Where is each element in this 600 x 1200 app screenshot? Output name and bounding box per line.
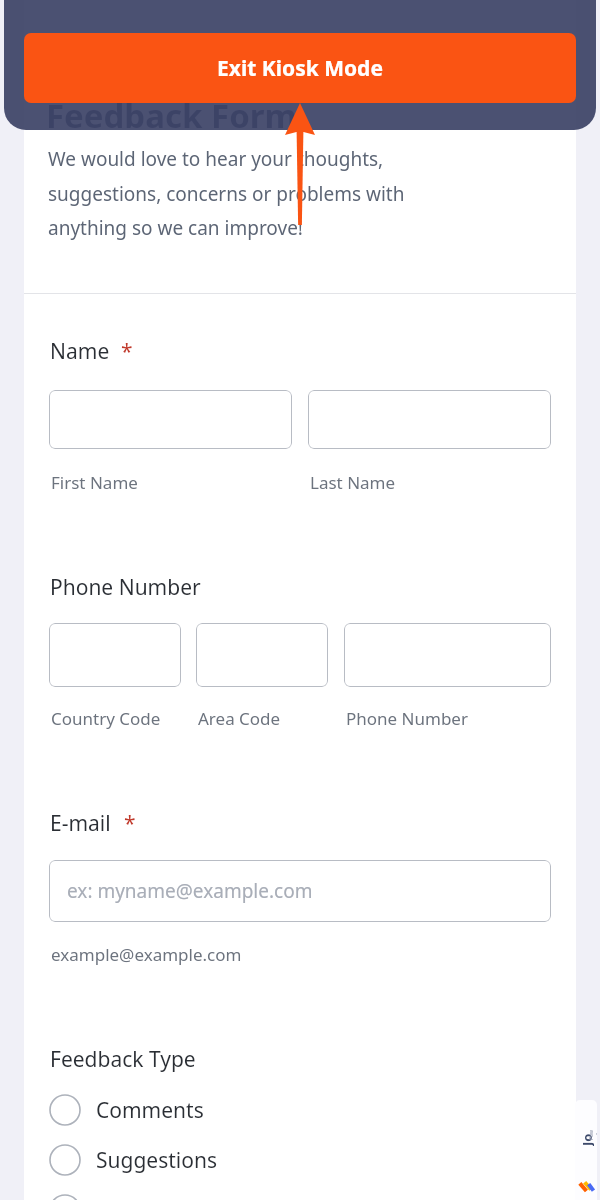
staticText: Feedback Form	[46, 93, 297, 138]
button[interactable]: Questions	[24, 1186, 576, 1200]
staticText: Area Code	[198, 707, 281, 730]
button[interactable]: Exit Kiosk Mode	[24, 33, 576, 103]
staticText: E-mail	[50, 809, 111, 838]
staticText: Powerful forms get it done	[588, 1130, 597, 1140]
button[interactable]: ex: myname@example.com	[49, 860, 551, 922]
button[interactable]: Jotform	[575, 1100, 597, 1200]
button[interactable]: Comments	[24, 1086, 576, 1134]
button[interactable]	[344, 623, 551, 687]
staticText: example@example.com	[51, 943, 242, 966]
button[interactable]	[196, 623, 328, 687]
staticText: *	[121, 337, 133, 366]
button[interactable]: Suggestions	[24, 1136, 576, 1184]
staticText: First Name	[51, 471, 138, 494]
staticText: Phone Number	[346, 707, 468, 730]
staticText: Comments	[96, 1096, 204, 1125]
staticText: Last Name	[310, 471, 396, 494]
staticText: Jotform	[578, 1130, 594, 1146]
staticText: *	[124, 809, 136, 838]
staticText: Exit Kiosk Mode	[217, 54, 383, 83]
button[interactable]	[49, 390, 292, 449]
staticText: Suggestions	[96, 1146, 217, 1175]
staticText: Name	[50, 337, 110, 366]
button[interactable]	[49, 623, 181, 687]
staticText: We would love to hear your thoughts, sug…	[48, 146, 478, 240]
staticText: Country Code	[51, 707, 161, 730]
button[interactable]	[308, 390, 551, 449]
staticText: ex: myname@example.com	[67, 878, 313, 904]
staticText: Phone Number	[50, 573, 201, 602]
staticText: Feedback Type	[50, 1045, 196, 1074]
